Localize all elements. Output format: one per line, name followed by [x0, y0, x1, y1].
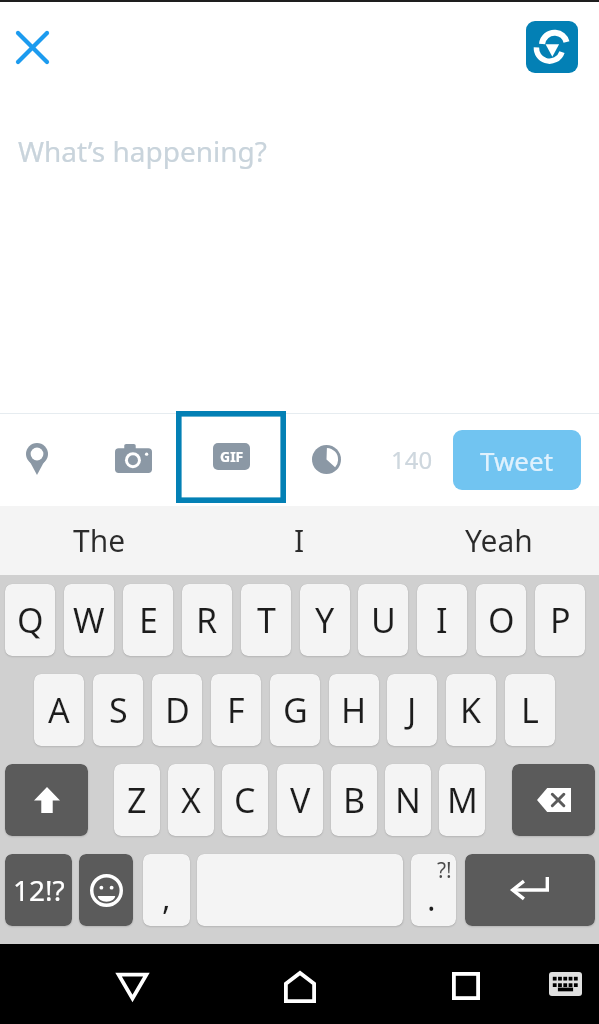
staticText: F: [227, 687, 245, 733]
staticText: 140: [391, 443, 433, 476]
button[interactable]: V: [277, 764, 323, 836]
button[interactable]: Close: [8, 23, 57, 72]
button[interactable]: C: [222, 764, 268, 836]
button[interactable]: A: [34, 674, 84, 746]
staticText: Tweet: [480, 443, 554, 478]
staticText: What’s happening?: [18, 132, 267, 170]
staticText: ,: [162, 876, 171, 920]
staticText: U: [371, 597, 396, 643]
button[interactable]: Shift: [5, 764, 88, 836]
button[interactable]: Create poll: [303, 436, 349, 482]
button[interactable]: T: [241, 584, 291, 656]
staticText: Z: [127, 777, 147, 823]
button[interactable]: Add location: [14, 436, 60, 482]
staticText: G: [283, 687, 308, 733]
button[interactable]: Comma: [143, 854, 190, 926]
button[interactable]: Q: [5, 584, 55, 656]
button[interactable]: The: [0, 506, 199, 575]
staticText: Yeah: [465, 520, 533, 561]
button[interactable]: Home: [276, 963, 324, 1011]
button[interactable]: Camera: [110, 435, 156, 481]
staticText: T: [257, 597, 276, 643]
button[interactable]: Yeah: [399, 506, 599, 575]
button[interactable]: Period: [411, 854, 456, 926]
button[interactable]: I: [199, 506, 399, 575]
staticText: I: [436, 597, 448, 643]
button[interactable]: U: [358, 584, 408, 656]
button[interactable]: J: [387, 674, 437, 746]
staticText: ?!: [437, 856, 452, 885]
staticText: R: [196, 597, 218, 643]
button[interactable]: L: [505, 674, 555, 746]
button[interactable]: B: [331, 764, 377, 836]
button[interactable]: Tweet: [453, 430, 581, 490]
button[interactable]: F: [211, 674, 261, 746]
staticText: E: [139, 597, 158, 643]
staticText: V: [290, 777, 311, 823]
button[interactable]: N: [385, 764, 431, 836]
staticText: Q: [17, 597, 44, 643]
staticText: X: [181, 777, 201, 823]
staticText: I: [294, 520, 305, 561]
button[interactable]: Emoji: [79, 854, 133, 926]
button[interactable]: Recent apps: [442, 962, 490, 1010]
button[interactable]: Periscope live video: [526, 21, 578, 73]
staticText: C: [234, 777, 256, 823]
staticText: N: [395, 777, 421, 823]
button[interactable]: Back: [108, 962, 156, 1010]
button[interactable]: E: [123, 584, 173, 656]
button[interactable]: M: [439, 764, 485, 836]
staticText: P: [550, 597, 571, 643]
staticText: .: [427, 877, 436, 921]
staticText: O: [488, 597, 515, 643]
staticText: W: [73, 597, 105, 643]
button[interactable]: Add GIF: [176, 411, 286, 503]
button[interactable]: Z: [114, 764, 160, 836]
staticText: L: [521, 687, 539, 733]
staticText: B: [343, 777, 366, 823]
button[interactable]: Enter: [465, 854, 595, 926]
staticText: S: [109, 687, 128, 733]
button[interactable]: K: [446, 674, 496, 746]
button[interactable]: P: [535, 584, 585, 656]
button[interactable]: G: [270, 674, 320, 746]
staticText: A: [48, 687, 70, 733]
button[interactable]: D: [152, 674, 202, 746]
staticText: M: [447, 777, 478, 823]
button[interactable]: W: [64, 584, 114, 656]
staticText: The: [73, 520, 126, 561]
button[interactable]: X: [168, 764, 214, 836]
button[interactable]: S: [93, 674, 143, 746]
staticText: Y: [315, 597, 335, 643]
button[interactable]: O: [476, 584, 526, 656]
button[interactable]: Hide keyboard: [543, 966, 588, 1002]
button[interactable]: Symbols: [5, 854, 72, 926]
staticText: GIF: [220, 447, 244, 466]
button[interactable]: Backspace: [512, 764, 595, 836]
button[interactable]: R: [182, 584, 232, 656]
button[interactable]: H: [329, 674, 379, 746]
button[interactable]: Y: [300, 584, 350, 656]
staticText: K: [460, 687, 482, 733]
button[interactable]: I: [417, 584, 467, 656]
staticText: D: [165, 687, 190, 733]
staticText: J: [407, 687, 417, 733]
staticText: H: [341, 687, 367, 733]
staticText: 12!?: [13, 871, 65, 909]
